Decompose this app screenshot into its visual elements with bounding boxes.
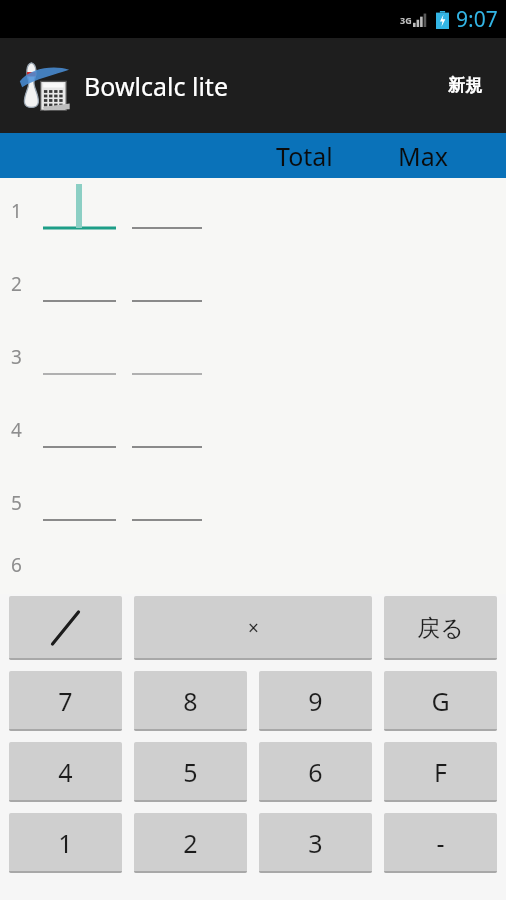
button[interactable]: 5	[0, 470, 506, 543]
button[interactable]: 6	[259, 742, 372, 802]
button[interactable]: 9	[259, 671, 372, 731]
button[interactable]: 3	[0, 324, 506, 397]
staticText: 1	[11, 198, 22, 224]
staticText: 9:07	[456, 5, 498, 34]
other: Bowlcalc app icon	[14, 57, 72, 115]
staticText: G	[431, 684, 450, 718]
staticText: Bowlcalc lite	[84, 69, 228, 103]
staticText: 4	[11, 417, 22, 443]
button[interactable]: 8	[134, 671, 247, 731]
staticText: -	[436, 826, 445, 860]
staticText: Max	[398, 139, 448, 173]
button[interactable]: 1	[9, 813, 122, 873]
staticText: 9	[308, 684, 323, 718]
staticText: 2	[11, 271, 22, 297]
staticText: 5	[11, 490, 22, 516]
staticText: F	[434, 755, 447, 789]
staticText: 3G	[400, 14, 412, 26]
button[interactable]: F	[384, 742, 497, 802]
staticText: 7	[58, 684, 73, 718]
staticText: ×	[248, 615, 259, 641]
staticText: 3	[11, 344, 22, 370]
button[interactable]: ×	[134, 596, 372, 660]
button[interactable]: 4	[9, 742, 122, 802]
button[interactable]: 1	[0, 178, 506, 251]
button[interactable]: Spare	[9, 596, 122, 660]
staticText: 8	[183, 684, 198, 718]
staticText: 新規	[448, 75, 482, 96]
staticText: 6	[308, 755, 323, 789]
staticText: Total	[276, 139, 333, 173]
button[interactable]: 5	[134, 742, 247, 802]
button[interactable]: 新規	[438, 65, 492, 106]
button[interactable]: 3	[259, 813, 372, 873]
button[interactable]: 4	[0, 397, 506, 470]
staticText: 1	[58, 826, 73, 860]
staticText: 6	[11, 552, 22, 578]
button[interactable]: 2	[0, 251, 506, 324]
button[interactable]: 2	[134, 813, 247, 873]
staticText: 5	[183, 755, 198, 789]
button[interactable]: G	[384, 671, 497, 731]
staticText: 2	[183, 826, 198, 860]
staticText: 3	[308, 826, 323, 860]
button[interactable]: 7	[9, 671, 122, 731]
button[interactable]: 戻る	[384, 596, 497, 660]
staticText: 戻る	[417, 614, 464, 643]
button[interactable]: -	[384, 813, 497, 873]
staticText: 4	[58, 755, 73, 789]
button[interactable]: 6	[0, 543, 506, 594]
